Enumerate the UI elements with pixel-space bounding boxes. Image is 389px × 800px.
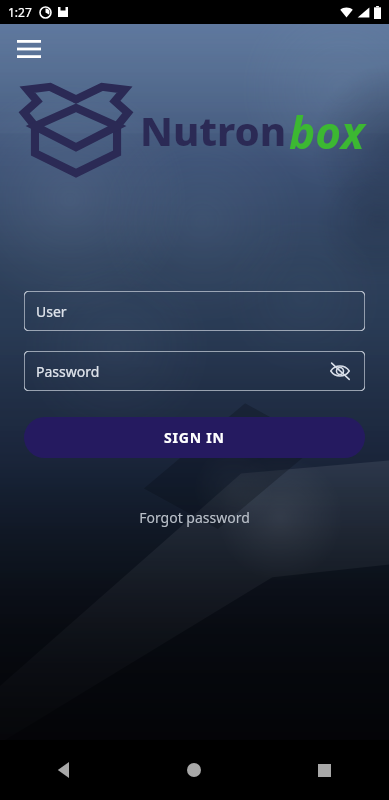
staticText: User [36,302,67,321]
button[interactable]: Open navigation menu [8,28,50,70]
staticText: SIGN IN [164,428,225,447]
staticText: Password [36,362,100,381]
button[interactable]: Show password [327,358,353,384]
button[interactable]: Back [0,740,129,800]
button[interactable]: Password [24,351,365,391]
staticText: Nutron [140,103,287,157]
button[interactable]: Recent apps [259,740,389,800]
button[interactable]: User [24,291,365,331]
button[interactable]: SIGN IN [24,417,365,458]
button[interactable]: Forgot password [24,504,365,530]
staticText: 1:27 [8,4,32,20]
staticText: Forgot password [139,508,250,527]
button[interactable]: Home [129,740,259,800]
staticText: box [289,102,365,162]
